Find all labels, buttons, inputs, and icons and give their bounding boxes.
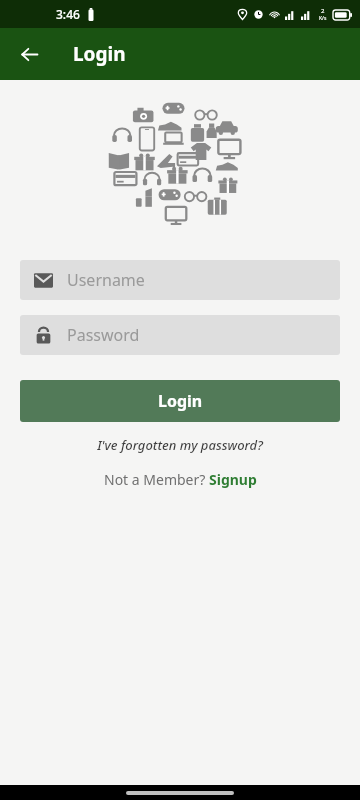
- button[interactable]: Username: [20, 260, 340, 300]
- staticText: 2: [321, 7, 325, 15]
- button[interactable]: Not a Member?: [96, 468, 265, 491]
- staticText: 3:46: [56, 6, 80, 22]
- staticText: Username: [67, 269, 145, 291]
- staticText: Password: [67, 324, 140, 346]
- staticText: K/s: [319, 15, 327, 22]
- button[interactable]: Login: [20, 380, 340, 422]
- button[interactable]: Password: [20, 315, 340, 355]
- staticText: Login: [73, 41, 126, 67]
- staticText: Signup: [209, 470, 257, 489]
- button[interactable]: Back: [12, 37, 46, 71]
- button[interactable]: I've forgotten my password?: [89, 434, 271, 456]
- staticText: Not a Member?: [104, 470, 209, 489]
- staticText: Login: [158, 390, 203, 412]
